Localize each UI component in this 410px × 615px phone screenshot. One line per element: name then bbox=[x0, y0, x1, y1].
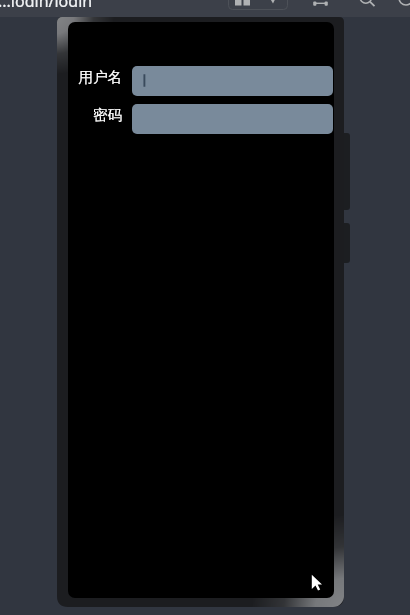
staticText: 用户名 bbox=[68, 68, 122, 86]
button[interactable] bbox=[132, 104, 333, 134]
button[interactable]: Measure bbox=[310, 0, 330, 7]
staticText: ...login/login bbox=[0, 0, 93, 7]
button[interactable] bbox=[132, 66, 333, 96]
button[interactable]: Device selector bbox=[228, 0, 288, 10]
button[interactable]: Refresh bbox=[392, 0, 410, 11]
staticText: 密码 bbox=[68, 106, 122, 124]
button[interactable]: Zoom bbox=[356, 0, 380, 10]
